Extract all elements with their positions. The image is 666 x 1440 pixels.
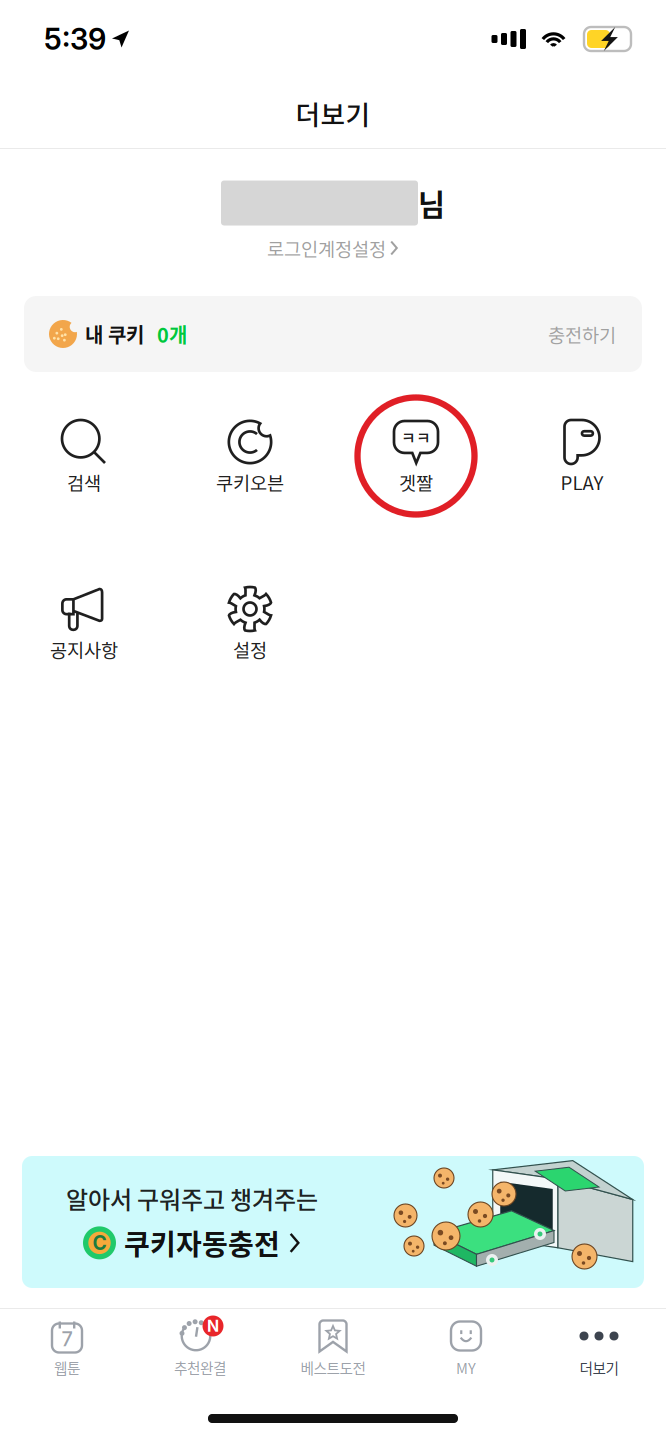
staticText: MY	[456, 1357, 476, 1378]
button[interactable]: 베스트도전	[266, 1309, 399, 1397]
button[interactable]: 공지사항	[1, 568, 167, 694]
staticText: 0개	[157, 319, 187, 348]
button[interactable]: 로그인계정설정	[267, 237, 399, 259]
staticText: 쿠키자동충전	[124, 1223, 280, 1263]
staticText: 더보기	[295, 94, 370, 132]
staticText: 설정	[233, 635, 267, 662]
staticText: C	[92, 1231, 106, 1255]
staticText: PLAY	[560, 468, 603, 495]
staticText: 7	[61, 1327, 72, 1351]
staticText: 님	[418, 182, 445, 224]
button[interactable]: 검색	[1, 401, 167, 527]
staticText: 추천완결	[174, 1357, 226, 1378]
staticText: 공지사항	[50, 635, 118, 662]
staticText: 더보기	[579, 1357, 618, 1378]
staticText: ㅋㅋ	[401, 425, 431, 449]
button[interactable]: 님	[221, 179, 445, 227]
staticText: 내 쿠키	[85, 319, 144, 348]
staticText: 검색	[67, 468, 101, 495]
staticText: 로그인계정설정	[267, 234, 386, 261]
button[interactable]: 설정	[167, 568, 333, 694]
button[interactable]: 알아서 구워주고 챙겨주는	[0, 1156, 666, 1288]
staticText: 웹툰	[54, 1357, 80, 1378]
button[interactable]: 7	[0, 1309, 133, 1397]
button[interactable]: 내 쿠키	[0, 296, 666, 372]
staticText: 겟짤	[399, 468, 433, 495]
button[interactable]: PLAY	[499, 401, 665, 527]
staticText: 쿠키오븐	[216, 468, 284, 495]
button[interactable]: 더보기	[532, 1309, 665, 1397]
staticText: 충전하기	[548, 320, 616, 347]
button[interactable]: ㅋㅋ	[333, 401, 499, 527]
staticText: N	[207, 1316, 219, 1336]
button[interactable]: N	[133, 1309, 266, 1397]
staticText: 알아서 구워주고 챙겨주는	[66, 1181, 318, 1216]
button[interactable]: MY	[399, 1309, 532, 1397]
button[interactable]: 쿠키오븐	[167, 401, 333, 527]
staticText: 베스트도전	[300, 1357, 365, 1378]
staticText: 5:39	[44, 21, 106, 57]
